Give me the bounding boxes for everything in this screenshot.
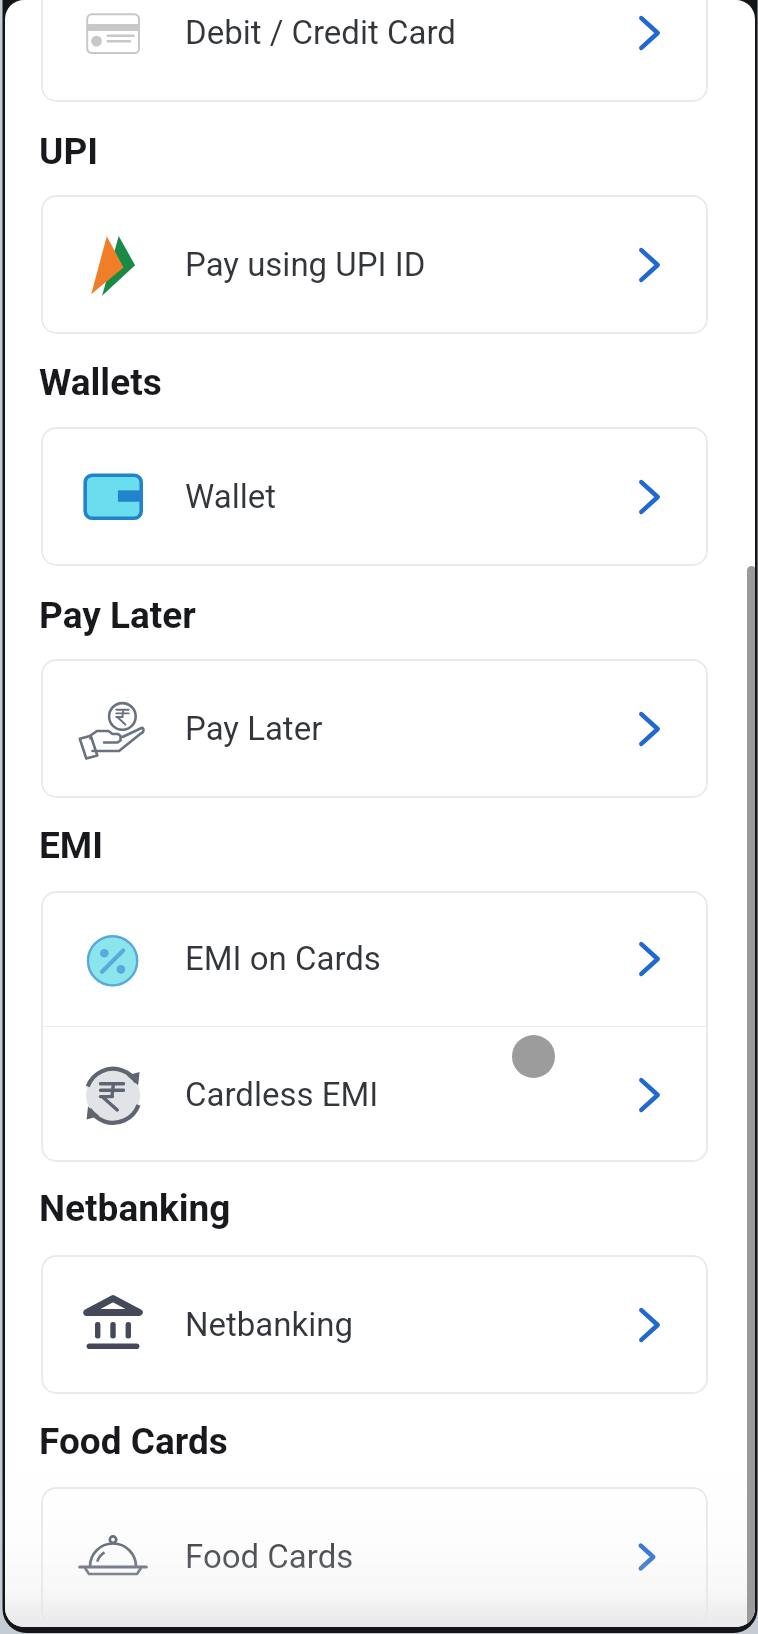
other: Open <box>639 942 660 976</box>
button[interactable]: Pay Later <box>41 659 708 798</box>
staticText: Food Cards <box>39 1420 228 1463</box>
staticText: EMI <box>39 824 104 867</box>
staticText: Pay using UPI ID <box>185 245 426 284</box>
other: Open <box>639 1078 660 1112</box>
button[interactable]: Wallet <box>41 427 708 566</box>
staticText: Cardless EMI <box>185 1075 379 1114</box>
other: Open <box>639 1308 660 1342</box>
button[interactable]: Debit / Credit Card <box>41 0 708 102</box>
button[interactable]: Cardless EMI <box>41 1027 708 1162</box>
staticText: Pay Later <box>185 709 323 748</box>
other: Open <box>639 1544 655 1570</box>
staticText: Wallet <box>185 477 277 516</box>
button[interactable]: Netbanking <box>41 1255 708 1394</box>
other: Open <box>639 480 660 514</box>
other: Open <box>639 16 660 50</box>
staticText: Pay Later <box>39 594 196 637</box>
staticText: EMI on Cards <box>185 939 381 978</box>
staticText: UPI <box>39 130 99 173</box>
button[interactable]: Pay using UPI ID <box>41 195 708 334</box>
other: Open <box>639 712 660 746</box>
button[interactable]: Food Cards <box>41 1487 708 1626</box>
staticText: Debit / Credit Card <box>185 13 456 52</box>
other: Open <box>639 248 660 282</box>
button[interactable]: EMI on Cards <box>41 891 708 1026</box>
staticText: Food Cards <box>185 1537 354 1576</box>
staticText: Wallets <box>39 361 162 404</box>
staticText: Netbanking <box>39 1187 231 1230</box>
staticText: Netbanking <box>185 1305 354 1344</box>
